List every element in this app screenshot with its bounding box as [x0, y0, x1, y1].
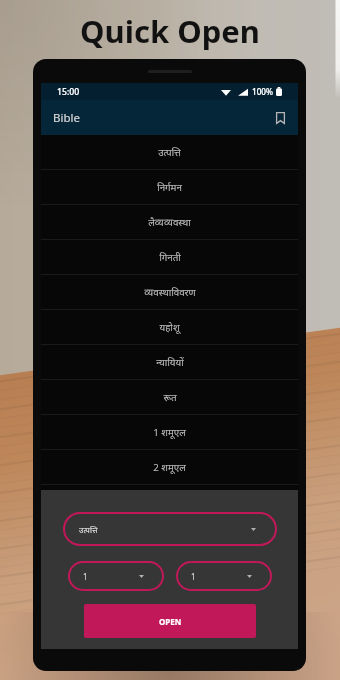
button[interactable]: उत्पत्ति: [41, 135, 298, 170]
staticText: यहोशू: [159, 321, 180, 334]
staticText: 1 शमूएल: [153, 426, 186, 439]
button[interactable]: निर्गमन: [41, 170, 298, 205]
staticText: लैव्यव्यवस्था: [148, 216, 191, 229]
staticText: Bible: [53, 110, 80, 126]
staticText: 100%: [252, 86, 274, 97]
staticText: 2 शमूएल: [153, 461, 186, 474]
button[interactable]: न्यायियों: [41, 345, 298, 380]
staticText: OPEN: [159, 616, 182, 627]
staticText: रूत: [163, 391, 177, 404]
button[interactable]: 1: [176, 561, 272, 591]
button[interactable]: गिनती: [41, 240, 298, 275]
button[interactable]: Bookmarks: [271, 109, 289, 127]
button[interactable]: यहोशू: [41, 310, 298, 345]
button[interactable]: OPEN: [84, 604, 256, 638]
button[interactable]: 2 शमूएल: [41, 450, 298, 485]
button[interactable]: 1: [68, 561, 164, 591]
staticText: गिनती: [159, 251, 181, 264]
staticText: 1: [191, 571, 196, 582]
staticText: व्यवस्थाविवरण: [144, 286, 196, 299]
staticText: न्यायियों: [156, 356, 184, 369]
button[interactable]: उत्पत्ति: [63, 512, 277, 546]
staticText: उत्पत्ति: [158, 146, 181, 159]
button[interactable]: व्यवस्थाविवरण: [41, 275, 298, 310]
staticText: उत्पत्ति: [79, 524, 98, 535]
button[interactable]: 1 शमूएल: [41, 415, 298, 450]
staticText: निर्गमन: [157, 181, 182, 194]
staticText: Quick Open: [0, 10, 340, 52]
button[interactable]: रूत: [41, 380, 298, 415]
staticText: 1: [83, 571, 88, 582]
staticText: 15:00: [57, 86, 80, 98]
button[interactable]: लैव्यव्यवस्था: [41, 205, 298, 240]
